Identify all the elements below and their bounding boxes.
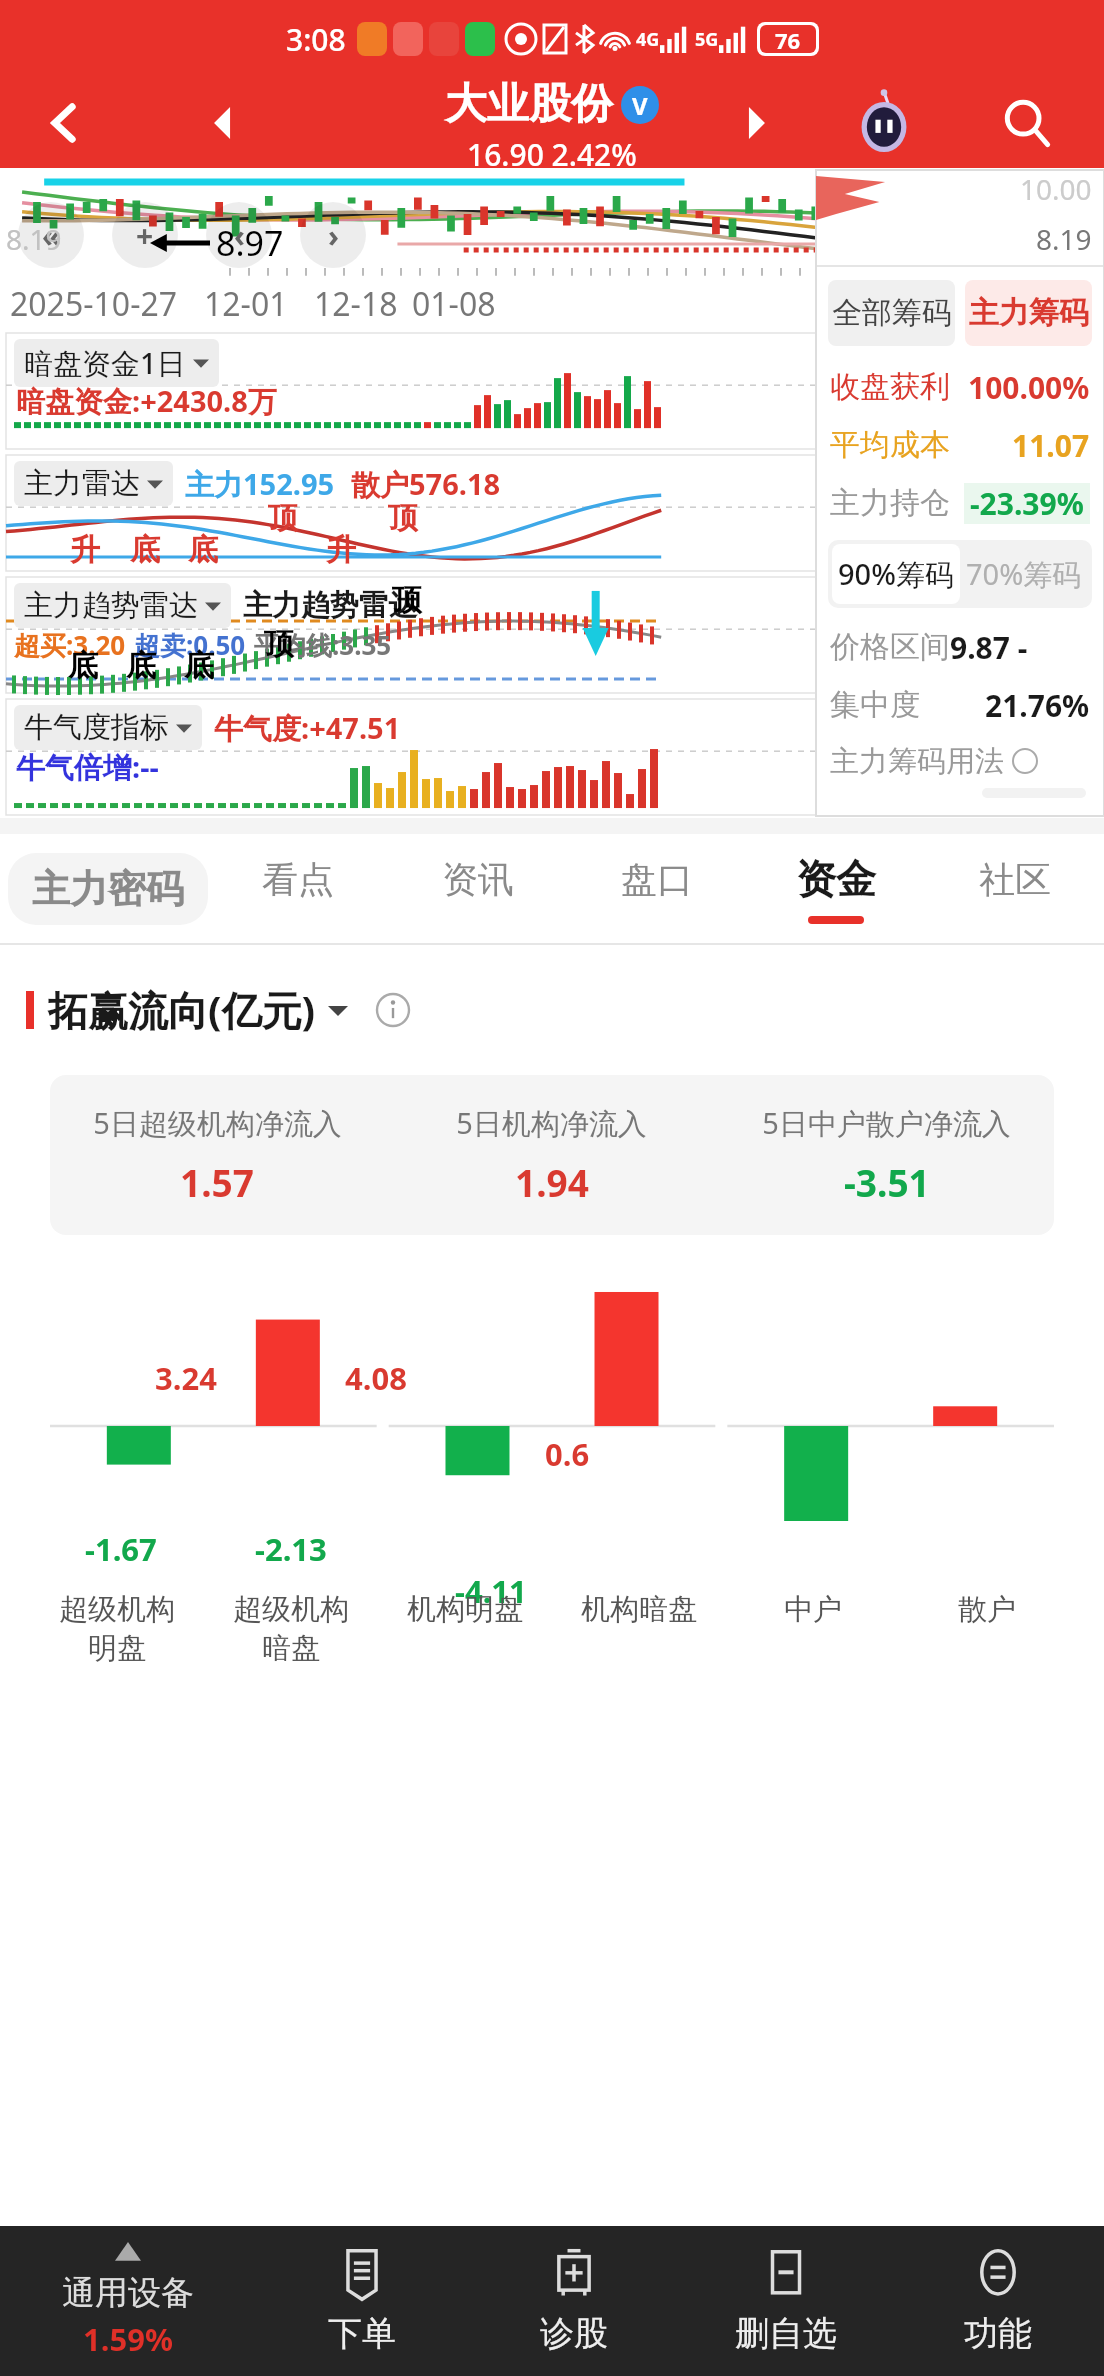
staticText: 底 (126, 647, 156, 685)
staticText: 11.07 (1012, 425, 1090, 466)
staticText: 主力趋势雷达 (24, 587, 198, 624)
staticText: 暗盘资金1日 (24, 343, 186, 383)
staticText: 超买:3.20 (14, 627, 126, 663)
staticText: 90%筹码 (838, 554, 954, 594)
button[interactable]: 主力密码 (8, 853, 208, 925)
button[interactable]: Previous (206, 202, 272, 268)
staticText: 8.19 (1036, 220, 1092, 258)
staticText: 主力雷达 (24, 465, 140, 502)
staticText: 底 (184, 647, 214, 685)
staticText: 拓赢流向(亿元) (48, 982, 316, 1037)
staticText: 散户576.18 (351, 464, 501, 504)
staticText: 5日机构净流入 (456, 1103, 647, 1143)
staticText: 删自选 (735, 2312, 837, 2355)
staticText: 0.6 (545, 1433, 590, 1475)
button[interactable]: Search (992, 88, 1062, 158)
staticText: 散户 (958, 1591, 1016, 1628)
staticText: 价格区间 (830, 628, 950, 666)
staticText: « (42, 215, 61, 256)
staticText: 顶 (388, 499, 418, 537)
staticText: -4.11 (455, 1570, 527, 1612)
staticText: 看点 (262, 857, 334, 902)
staticText: V (632, 89, 648, 122)
button[interactable]: 主力筹码用法 (830, 734, 1090, 788)
staticText: 升 (326, 531, 356, 569)
button[interactable]: 功能 (892, 2226, 1104, 2376)
button[interactable]: 牛气度指标 (14, 705, 202, 750)
button[interactable]: 删自选 (680, 2226, 892, 2376)
staticText: 3.24 (155, 1357, 217, 1399)
staticText: 3:08 (286, 19, 346, 60)
staticText: -23.39% (970, 483, 1084, 524)
staticText: 100.00% (968, 367, 1090, 408)
staticText: 超级机构 明盘 (59, 1591, 175, 1667)
button[interactable]: 通用设备 (0, 2226, 256, 2376)
button[interactable]: Next (300, 202, 366, 268)
staticText: 升 (70, 531, 100, 569)
staticText: 1.59% (83, 2318, 173, 2360)
staticText: -1.67 (85, 1528, 157, 1570)
button[interactable]: 暗盘资金1日 (14, 339, 219, 387)
staticText: 16.90 2.42% (467, 134, 637, 168)
button[interactable]: 拓赢流向(亿元) (26, 982, 1104, 1037)
button[interactable]: Zoom in (112, 202, 178, 268)
staticText: 4.08 (345, 1357, 407, 1399)
button[interactable]: 盘口 (567, 834, 746, 944)
button[interactable]: 70%筹码 (960, 544, 1088, 604)
button[interactable]: 资讯 (388, 834, 567, 944)
staticText: 01-08 (412, 282, 496, 326)
staticText: 5G (695, 27, 719, 52)
staticText: 超级机构 暗盘 (233, 1591, 349, 1667)
staticText: 下单 (328, 2312, 396, 2355)
staticText: 8.19 (6, 220, 62, 258)
staticText: ‹ (234, 215, 245, 256)
staticText: 70%筹码 (966, 554, 1082, 594)
button[interactable]: 90%筹码 (832, 544, 960, 604)
button[interactable]: Previous stock (195, 95, 251, 151)
button[interactable]: 社区 (925, 834, 1104, 944)
button[interactable]: 看点 (208, 834, 388, 944)
staticText: 主力筹码 (969, 294, 1089, 332)
button[interactable]: Next stock (728, 95, 784, 151)
button[interactable]: 主力筹码 (965, 280, 1092, 346)
button[interactable]: AI assistant (844, 83, 924, 163)
staticText: 通用设备 (62, 2272, 194, 2314)
button[interactable]: 诊股 (468, 2226, 680, 2376)
staticText: 12-18 (314, 282, 398, 326)
staticText: 中户 (784, 1591, 842, 1628)
staticText: 牛气度:+47.51 (214, 708, 401, 748)
staticText: 牛气度指标 (24, 709, 169, 746)
button[interactable]: Scroll left (18, 202, 84, 268)
button[interactable]: 资金 (746, 834, 925, 944)
staticText: 底 (188, 531, 218, 569)
staticText: 大业股份 (445, 78, 613, 131)
staticText: 2025-10-27 (10, 282, 178, 326)
button[interactable]: 主力趋势雷达 (14, 583, 231, 628)
staticText: 底 (130, 531, 160, 569)
staticText: 顶 (268, 499, 298, 537)
staticText: 1.57 (180, 1157, 254, 1207)
staticText: 主力152.95 (185, 464, 335, 504)
staticText: 76 (775, 25, 801, 53)
staticText: 5日中户散户净流入 (762, 1103, 1011, 1143)
staticText: 机构明盘 (407, 1591, 523, 1628)
staticText: 诊股 (540, 2312, 608, 2355)
staticText: 暗盘资金:+2430.8万 (16, 381, 277, 421)
staticText: 21.76% (985, 685, 1090, 726)
staticText: 全部筹码 (832, 294, 952, 332)
staticText: 8.97 (216, 220, 284, 266)
staticText: 10.00 (1020, 170, 1092, 208)
staticText: -2.13 (255, 1528, 327, 1570)
button[interactable]: Back (34, 92, 96, 154)
staticText: 平均成本 (830, 426, 950, 464)
staticText: 底 (68, 647, 98, 685)
staticText: 收盘获利 (830, 368, 950, 406)
staticText: 主力趋势雷达 (243, 587, 417, 624)
staticText: -3.51 (844, 1157, 930, 1207)
staticText: 主力持仓 (830, 484, 950, 522)
button[interactable]: 主力雷达 (14, 461, 173, 506)
button[interactable]: 下单 (256, 2226, 468, 2376)
staticText: 5日超级机构净流入 (93, 1103, 342, 1143)
button[interactable]: 全部筹码 (828, 280, 955, 346)
